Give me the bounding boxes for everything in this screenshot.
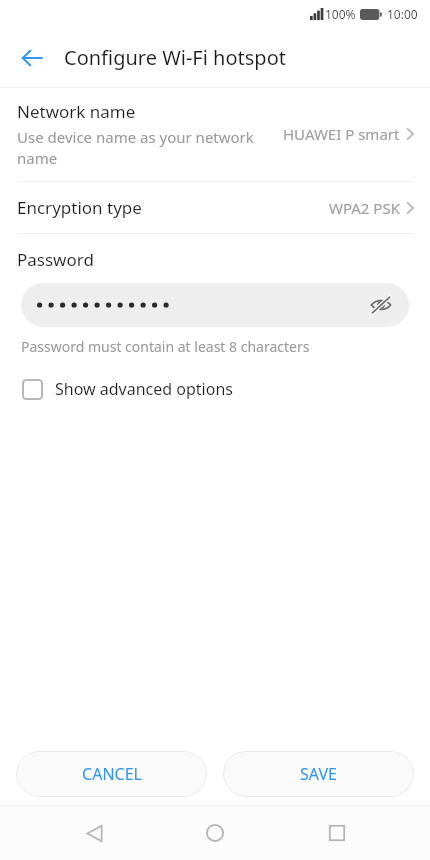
button[interactable]: SAVE — [223, 751, 414, 797]
button[interactable]: Encryption type — [0, 182, 430, 233]
button[interactable]: Recent apps — [309, 806, 365, 860]
button[interactable]: Back — [66, 806, 122, 860]
button[interactable]: Network name — [0, 88, 430, 181]
button[interactable]: Back — [10, 36, 54, 80]
button[interactable]: Show password — [359, 283, 403, 327]
staticText: Configure Wi-Fi hotspot — [64, 44, 286, 71]
staticText: CANCEL — [82, 763, 142, 785]
button[interactable]: Show password — [21, 283, 409, 327]
staticText: HUAWEI P smart — [283, 124, 400, 144]
staticText: Password — [17, 248, 94, 271]
staticText: 100% — [325, 6, 356, 22]
staticText: SAVE — [300, 763, 337, 785]
staticText: Show advanced options — [55, 378, 233, 400]
staticText: Encryption type — [17, 196, 329, 219]
staticText: Password must contain at least 8 charact… — [21, 337, 310, 356]
button[interactable]: CANCEL — [16, 751, 207, 797]
staticText: WPA2 PSK — [329, 198, 400, 218]
button[interactable]: Home — [187, 806, 243, 860]
staticText: Network name — [17, 100, 136, 123]
button[interactable]: Show advanced options — [14, 370, 241, 408]
staticText: Use device name as your network name — [17, 127, 275, 169]
staticText: 10:00 — [387, 6, 418, 22]
